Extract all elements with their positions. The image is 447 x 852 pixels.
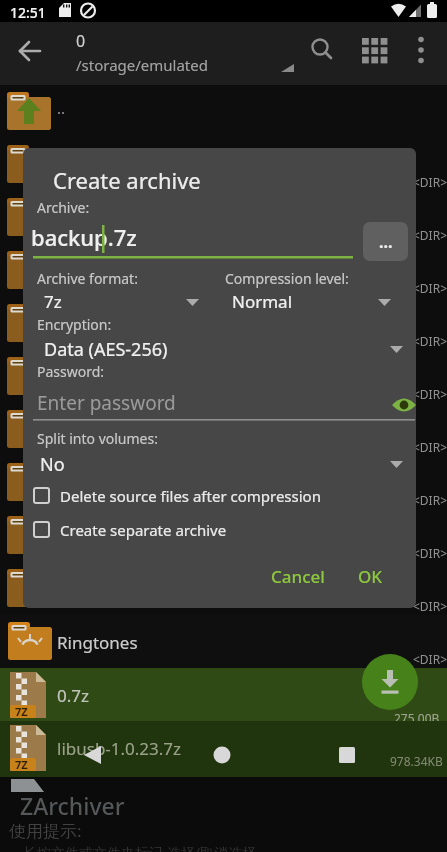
staticText: Normal bbox=[232, 290, 293, 313]
staticText: .. bbox=[57, 98, 66, 118]
button[interactable] bbox=[0, 721, 447, 777]
button[interactable] bbox=[206, 740, 238, 772]
button[interactable]: OK bbox=[340, 556, 400, 596]
staticText: libusb-1.0.23.7z bbox=[57, 737, 182, 760]
staticText: 使用提示: bbox=[9, 819, 82, 842]
button[interactable] bbox=[331, 740, 363, 772]
staticText: backup.7z bbox=[31, 222, 137, 252]
button[interactable] bbox=[407, 33, 437, 67]
staticText: <DIR> bbox=[413, 333, 447, 349]
staticText: <DIR> bbox=[413, 227, 447, 243]
staticText: Create separate archive bbox=[60, 520, 227, 540]
staticText: 0 bbox=[76, 30, 86, 52]
button[interactable] bbox=[76, 740, 112, 772]
staticText: <DIR> bbox=[413, 174, 447, 190]
button[interactable] bbox=[305, 33, 339, 67]
staticText: Delete source files after compression bbox=[60, 486, 321, 506]
staticText: 7Z bbox=[15, 757, 28, 772]
staticText: /storage/emulated bbox=[76, 55, 208, 75]
button[interactable] bbox=[362, 654, 418, 710]
button[interactable]: Normal bbox=[225, 288, 405, 316]
staticText: 978.34KB bbox=[390, 753, 443, 769]
button[interactable]: 7z bbox=[37, 288, 217, 316]
staticText: <DIR> bbox=[413, 598, 447, 614]
button[interactable]: Cancel bbox=[255, 556, 341, 596]
staticText: Split into volumes: bbox=[37, 429, 158, 448]
staticText: <DIR> bbox=[413, 386, 447, 402]
staticText: Encryption: bbox=[37, 315, 112, 334]
button[interactable] bbox=[358, 33, 392, 67]
staticText: Archive: bbox=[37, 198, 90, 217]
staticText: <DIR> bbox=[413, 439, 447, 455]
staticText: 0.7z bbox=[57, 684, 89, 707]
button[interactable]: No bbox=[37, 450, 407, 478]
button[interactable]: Create separate archive bbox=[33, 518, 393, 542]
button[interactable] bbox=[12, 36, 46, 68]
staticText: No bbox=[40, 452, 65, 477]
staticText: 12:51 bbox=[10, 3, 46, 22]
staticText: <DIR> bbox=[413, 651, 447, 667]
staticText: Enter password bbox=[37, 390, 176, 416]
staticText: Ringtones bbox=[57, 631, 138, 654]
staticText: 一长按文件或文件夹标记,选择/取消选择 bbox=[9, 843, 256, 852]
staticText: OK bbox=[358, 565, 383, 588]
staticText: Cancel bbox=[271, 565, 325, 588]
staticText: <DIR> bbox=[413, 545, 447, 561]
staticText: Archive format: bbox=[37, 269, 138, 288]
button[interactable]: ... bbox=[363, 222, 408, 261]
staticText: Compression level: bbox=[225, 269, 349, 288]
staticText: Password: bbox=[37, 362, 105, 381]
staticText: <DIR> bbox=[413, 492, 447, 508]
button[interactable]: Data (AES-256) bbox=[37, 336, 407, 364]
staticText: Create archive bbox=[53, 165, 201, 195]
staticText: 275.00B bbox=[394, 710, 440, 726]
staticText: ZArchiver bbox=[20, 790, 125, 821]
staticText: Data (AES-256) bbox=[44, 337, 168, 362]
button[interactable] bbox=[0, 615, 447, 668]
button[interactable]: Delete source files after compression bbox=[33, 484, 393, 508]
button[interactable]: Enter password bbox=[33, 388, 406, 420]
button[interactable] bbox=[0, 668, 447, 721]
staticText: 7Z bbox=[15, 704, 28, 719]
staticText: 7z bbox=[44, 290, 62, 313]
staticText: <DIR> bbox=[413, 280, 447, 296]
staticText: ... bbox=[379, 231, 393, 253]
